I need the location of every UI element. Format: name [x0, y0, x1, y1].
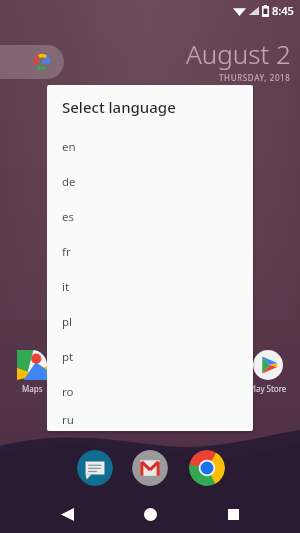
- staticText: fr: [62, 244, 71, 260]
- staticText: ro: [62, 384, 74, 400]
- button[interactable]: ro: [47, 374, 253, 409]
- staticText: en: [62, 139, 76, 155]
- staticText: es: [62, 209, 74, 225]
- staticText: pt: [62, 349, 74, 365]
- staticText: ru: [62, 412, 74, 428]
- staticText: Select language: [62, 97, 176, 117]
- staticText: it: [62, 279, 70, 295]
- staticText: THURSDAY, 2018: [219, 72, 291, 83]
- button[interactable]: es: [47, 199, 253, 234]
- staticText: de: [62, 174, 76, 190]
- button[interactable]: Gmail: [132, 450, 168, 486]
- button[interactable]: Google Search: [0, 45, 64, 79]
- button[interactable]: Back: [52, 499, 82, 529]
- button[interactable]: de: [47, 164, 253, 199]
- button[interactable]: pt: [47, 339, 253, 374]
- staticText: August 2: [186, 36, 291, 71]
- button[interactable]: Play Store: [246, 350, 290, 394]
- button[interactable]: Messages: [77, 450, 113, 486]
- button[interactable]: en: [47, 129, 253, 164]
- button[interactable]: ru: [47, 409, 253, 431]
- staticText: Maps: [22, 383, 43, 394]
- button[interactable]: fr: [47, 234, 253, 269]
- staticText: Play Store: [249, 383, 287, 394]
- button[interactable]: pl: [47, 304, 253, 339]
- button[interactable]: Chrome: [189, 450, 225, 486]
- staticText: pl: [62, 314, 73, 330]
- button[interactable]: Recent apps: [218, 499, 248, 529]
- button[interactable]: August 2: [186, 36, 291, 83]
- button[interactable]: it: [47, 269, 253, 304]
- button[interactable]: Home: [135, 499, 165, 529]
- staticText: 8:45: [272, 3, 294, 18]
- button[interactable]: Maps: [10, 350, 54, 394]
